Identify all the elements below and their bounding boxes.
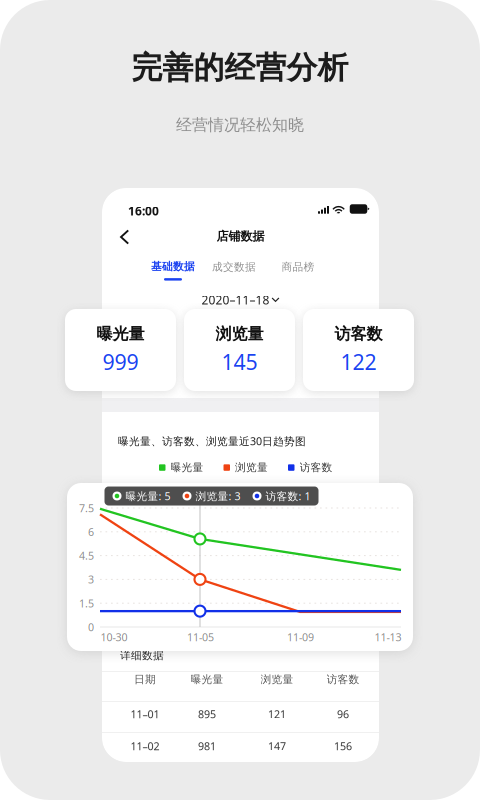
staticText: 147 — [268, 739, 286, 753]
staticText: 店铺数据 — [216, 229, 264, 244]
staticText: 145 — [221, 348, 257, 376]
staticText: 详细数据 — [120, 649, 164, 662]
button[interactable]: 访客数 — [303, 309, 414, 391]
staticText: 0 — [88, 620, 94, 634]
staticText: 1.5 — [79, 596, 94, 610]
staticText: 完善的经营分析 — [131, 49, 348, 87]
staticText: 999 — [102, 348, 138, 376]
staticText: 11-05 — [187, 630, 214, 644]
button[interactable]: 浏览量 — [184, 309, 295, 391]
button[interactable]: 成交数据 — [203, 260, 265, 274]
staticText: 10-30 — [100, 630, 127, 644]
staticText: 曝光量、访客数、浏览量近30日趋势图 — [118, 434, 306, 448]
staticText: 11-09 — [287, 630, 314, 644]
staticText: 曝光量 — [190, 673, 223, 686]
staticText: 156 — [334, 739, 352, 753]
staticText: 7.5 — [79, 501, 94, 515]
staticText: 日期 — [134, 673, 156, 686]
staticText: 6 — [88, 525, 94, 539]
button[interactable]: 曝光量 — [65, 309, 176, 391]
staticText: 895 — [198, 707, 216, 721]
button[interactable]: Back — [112, 224, 138, 250]
staticText: 访客数 — [299, 461, 332, 474]
staticText: 经营情况轻松知晓 — [176, 115, 304, 135]
staticText: 2020–11–18 — [201, 292, 269, 308]
button[interactable]: 2020–11–18 — [201, 292, 279, 308]
staticText: 成交数据 — [212, 260, 256, 273]
staticText: 121 — [268, 707, 286, 721]
staticText: 3 — [88, 572, 94, 587]
staticText: 浏览量 — [215, 324, 263, 344]
staticText: 曝光量: 5 — [125, 489, 170, 503]
staticText: 11–01 — [130, 707, 159, 721]
staticText: 981 — [198, 739, 216, 753]
staticText: 11-13 — [374, 630, 401, 644]
button[interactable]: 商品榜 — [267, 260, 329, 274]
staticText: 访客数 — [334, 324, 382, 344]
staticText: 浏览量: 3 — [195, 489, 240, 503]
staticText: 基础数据 — [151, 260, 195, 273]
staticText: 浏览量 — [260, 673, 293, 686]
staticText: 浏览量 — [235, 461, 268, 474]
staticText: 曝光量 — [96, 324, 144, 344]
staticText: 访客数: 1 — [265, 489, 310, 503]
staticText: 16:00 — [128, 203, 159, 219]
staticText: 4.5 — [79, 549, 94, 563]
staticText: 访客数 — [326, 673, 359, 686]
staticText: 122 — [340, 348, 376, 376]
staticText: 商品榜 — [281, 260, 314, 273]
staticText: 11–02 — [130, 739, 159, 753]
button[interactable]: 基础数据 — [142, 260, 204, 281]
staticText: 曝光量 — [170, 461, 203, 474]
staticText: 96 — [337, 707, 349, 721]
